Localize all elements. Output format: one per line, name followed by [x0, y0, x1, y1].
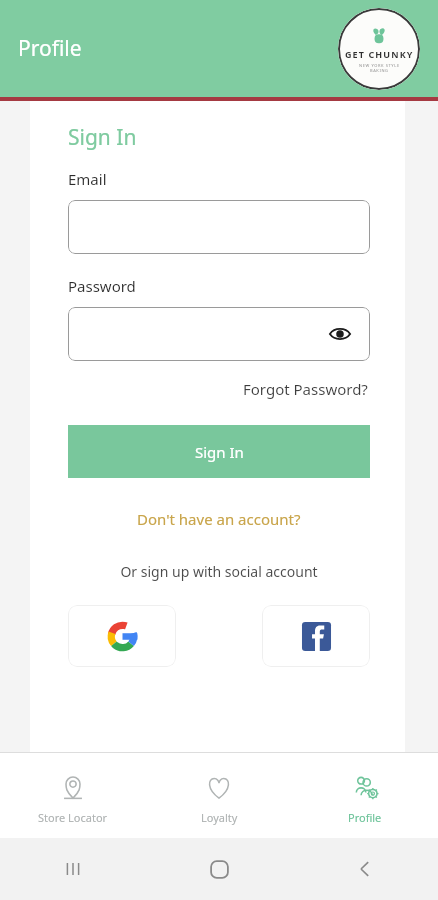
button[interactable]: Recent apps — [51, 847, 95, 891]
button[interactable]: Don't have an account? — [135, 507, 303, 531]
staticText: NEW YORK STYLE — [359, 63, 400, 68]
button[interactable]: Loyalty — [146, 753, 292, 825]
staticText: Sign In — [68, 123, 137, 152]
staticText: Profile — [348, 810, 382, 825]
button[interactable]: Show password — [327, 321, 353, 347]
staticText: Password — [68, 276, 136, 296]
staticText: Or sign up with social account — [120, 562, 318, 581]
button[interactable]: Sign In — [68, 425, 370, 478]
staticText: Profile — [18, 34, 82, 63]
button[interactable]: Profile — [292, 753, 438, 825]
button[interactable] — [68, 200, 370, 254]
button[interactable]: Back — [343, 847, 387, 891]
button[interactable]: Get Chunky logo — [338, 8, 420, 90]
staticText: GET CHUNKY — [345, 48, 414, 60]
staticText: Loyalty — [201, 810, 238, 825]
staticText: Sign In — [195, 442, 244, 462]
staticText: Email — [68, 169, 107, 189]
button[interactable]: Sign in with Google — [68, 605, 176, 667]
staticText: BAKING — [370, 68, 389, 73]
button[interactable]: Store Locator — [0, 753, 146, 825]
button[interactable]: Sign in with Facebook — [262, 605, 370, 667]
button[interactable]: Forgot Password? — [241, 377, 370, 401]
button[interactable]: Show password — [68, 307, 370, 361]
staticText: Store Locator — [38, 810, 108, 825]
button[interactable]: Home — [197, 847, 241, 891]
